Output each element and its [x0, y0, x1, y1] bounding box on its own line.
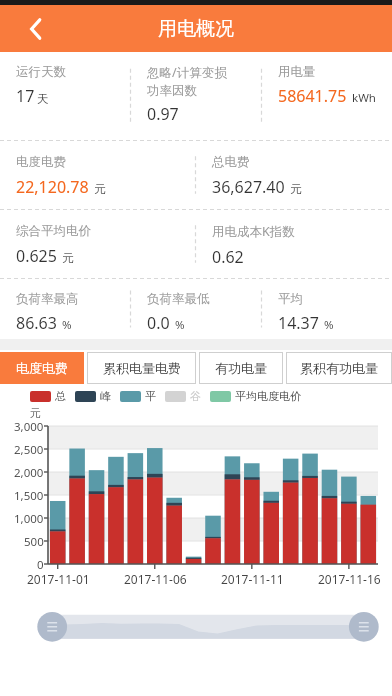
- staticText: 元: [287, 181, 302, 197]
- staticText: 0.97: [147, 103, 179, 125]
- button[interactable]: Back: [18, 12, 52, 46]
- staticText: 运行天数: [16, 64, 66, 80]
- staticText: 86.63: [16, 312, 57, 334]
- staticText: 0.0: [147, 312, 170, 334]
- staticText: 14.37: [278, 312, 319, 334]
- staticText: 峰: [100, 389, 111, 403]
- button[interactable]: 电度电费: [0, 352, 84, 384]
- staticText: %: [321, 317, 334, 333]
- staticText: 用电概况: [158, 17, 234, 41]
- staticText: 2,500: [14, 442, 44, 458]
- staticText: 天: [37, 92, 49, 106]
- staticText: 2017-11-16: [318, 571, 381, 587]
- staticText: 有功电量: [215, 360, 267, 376]
- staticText: 元: [59, 250, 74, 266]
- staticText: 元: [30, 406, 41, 420]
- staticText: 1,500: [14, 488, 44, 504]
- staticText: 平均: [278, 291, 303, 307]
- button[interactable]: 累积电量电费: [87, 352, 196, 384]
- staticText: 电度电费: [16, 360, 68, 376]
- staticText: kWh: [349, 90, 376, 106]
- staticText: 36,627.40: [212, 176, 285, 198]
- staticText: 平: [145, 389, 156, 403]
- button[interactable]: 有功电量: [199, 352, 283, 384]
- staticText: 平均电度电价: [235, 389, 301, 403]
- staticText: 1,000: [14, 511, 44, 527]
- staticText: 忽略/计算变损 功率因数: [147, 64, 227, 98]
- staticText: 0.625: [16, 245, 57, 267]
- staticText: 2017-11-06: [124, 571, 187, 587]
- button[interactable]: 累积有功电量: [286, 352, 392, 384]
- staticText: 累积有功电量: [300, 360, 378, 376]
- staticText: 2017-11-11: [221, 571, 284, 587]
- staticText: 3,000: [14, 419, 44, 435]
- staticText: %: [172, 317, 185, 333]
- staticText: 0.62: [212, 246, 244, 268]
- staticText: 负荷率最高: [16, 291, 79, 307]
- staticText: 总: [55, 389, 66, 403]
- staticText: 58641.75: [278, 85, 347, 107]
- staticText: 元: [91, 181, 106, 197]
- staticText: 用电成本K指数: [212, 223, 295, 240]
- staticText: 谷: [190, 389, 201, 403]
- staticText: 总电费: [212, 154, 250, 170]
- staticText: 2017-11-01: [27, 571, 90, 587]
- staticText: 累积电量电费: [103, 360, 181, 376]
- staticText: 用电量: [278, 64, 316, 80]
- staticText: 2,000: [14, 465, 44, 481]
- staticText: %: [59, 317, 72, 333]
- staticText: 500: [24, 534, 44, 550]
- staticText: 负荷率最低: [147, 291, 210, 307]
- staticText: 17: [16, 85, 35, 107]
- staticText: 0: [37, 557, 44, 573]
- staticText: 22,120.78: [16, 176, 89, 198]
- staticText: 电度电费: [16, 154, 66, 170]
- staticText: 综合平均电价: [16, 223, 91, 239]
